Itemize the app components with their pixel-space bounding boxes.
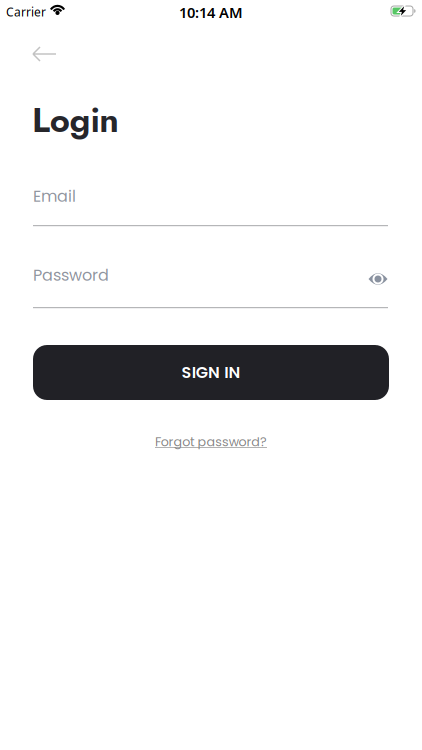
button[interactable]: Forgot password? [155, 433, 267, 451]
button[interactable]: SIGN IN [33, 345, 389, 400]
staticText: Forgot password? [155, 433, 267, 451]
staticText: SIGN IN [181, 361, 240, 384]
staticText: Email [33, 185, 76, 207]
staticText: 10:14 AM [179, 2, 243, 22]
button[interactable] [366, 270, 390, 288]
staticText: Login [32, 95, 119, 145]
staticText: Password [33, 264, 109, 286]
button[interactable] [26, 42, 60, 66]
staticText: Carrier [6, 4, 46, 20]
